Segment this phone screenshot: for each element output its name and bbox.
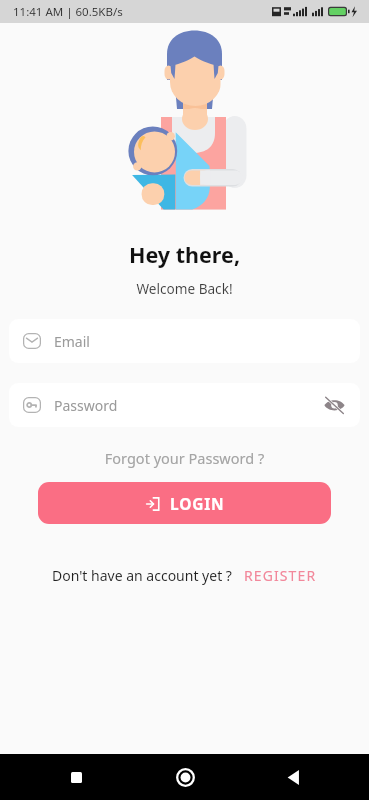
button[interactable]: Recents — [56, 757, 96, 797]
staticText: Email — [54, 332, 90, 351]
staticText: Hey there, — [0, 240, 369, 269]
button[interactable]: Forgot your Password ? — [0, 448, 369, 468]
button[interactable]: Show password — [320, 391, 348, 419]
staticText: LOGIN — [170, 493, 225, 514]
staticText: 11:41 AM | 60.5KB/s — [13, 4, 123, 20]
button[interactable]: REGISTER — [244, 566, 317, 585]
staticText: Don't have an account yet ? — [52, 566, 232, 585]
staticText: Password — [54, 396, 118, 415]
staticText: Welcome Back! — [0, 279, 369, 298]
button[interactable]: Password — [9, 383, 360, 427]
staticText: REGISTER — [244, 566, 317, 585]
button[interactable]: Home — [165, 757, 205, 797]
button[interactable]: Email — [9, 319, 360, 363]
button[interactable]: Back — [273, 757, 313, 797]
button[interactable]: LOGIN — [38, 482, 331, 524]
